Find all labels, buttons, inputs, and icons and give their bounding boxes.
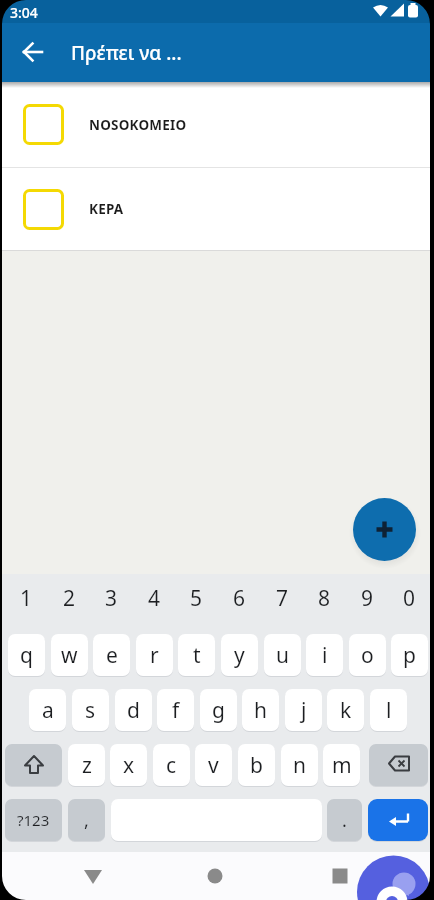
- button[interactable]: e: [93, 634, 130, 676]
- staticText: 1: [20, 584, 33, 613]
- staticText: e: [106, 641, 118, 670]
- button[interactable]: [322, 858, 358, 894]
- staticText: 5: [190, 584, 203, 613]
- staticText: Πρέπει να ...: [71, 40, 182, 66]
- button[interactable]: p: [391, 634, 428, 676]
- staticText: b: [250, 751, 263, 780]
- staticText: 2: [63, 584, 76, 613]
- staticText: NOSOKOMEIO: [89, 116, 187, 134]
- button[interactable]: 9: [349, 583, 386, 613]
- button[interactable]: ?123: [5, 799, 62, 841]
- button[interactable]: u: [264, 634, 301, 676]
- button[interactable]: 4: [136, 583, 173, 613]
- button[interactable]: c: [153, 744, 190, 786]
- button[interactable]: 5: [178, 583, 215, 613]
- staticText: f: [172, 696, 180, 725]
- staticText: p: [403, 641, 416, 670]
- button[interactable]: [5, 744, 62, 786]
- staticText: x: [123, 751, 135, 780]
- staticText: s: [85, 696, 96, 725]
- staticText: g: [212, 696, 225, 725]
- staticText: t: [193, 641, 201, 670]
- button[interactable]: 7: [264, 583, 301, 613]
- button[interactable]: z: [68, 744, 105, 786]
- staticText: c: [166, 751, 177, 780]
- staticText: q: [20, 641, 33, 670]
- button[interactable]: ,: [68, 799, 105, 841]
- button[interactable]: [13, 32, 53, 72]
- button[interactable]: 8: [306, 583, 343, 613]
- staticText: y: [234, 641, 245, 670]
- staticText: o: [361, 641, 374, 670]
- staticText: j: [301, 696, 307, 725]
- staticText: ,: [84, 808, 89, 833]
- staticText: 4: [148, 584, 161, 613]
- button[interactable]: o: [349, 634, 386, 676]
- button[interactable]: k: [327, 689, 364, 731]
- staticText: .: [342, 808, 347, 833]
- staticText: n: [293, 751, 306, 780]
- staticText: i: [322, 641, 328, 670]
- button[interactable]: h: [242, 689, 279, 731]
- button[interactable]: q: [8, 634, 45, 676]
- button[interactable]: j: [285, 689, 322, 731]
- button[interactable]: NOSOKOMEIO: [0, 82, 434, 167]
- staticText: d: [127, 696, 140, 725]
- button[interactable]: [356, 855, 434, 900]
- button[interactable]: .: [327, 799, 362, 841]
- button[interactable]: l: [370, 689, 407, 731]
- staticText: u: [276, 641, 289, 670]
- button[interactable]: i: [306, 634, 343, 676]
- button[interactable]: b: [238, 744, 275, 786]
- button[interactable]: [75, 858, 111, 894]
- button[interactable]: KEPA: [0, 168, 434, 250]
- staticText: h: [254, 696, 267, 725]
- staticText: k: [340, 696, 352, 725]
- button[interactable]: x: [110, 744, 147, 786]
- button[interactable]: y: [221, 634, 258, 676]
- staticText: KEPA: [89, 200, 124, 218]
- staticText: r: [150, 641, 159, 670]
- button[interactable]: v: [195, 744, 232, 786]
- button[interactable]: [369, 744, 428, 786]
- button[interactable]: r: [136, 634, 173, 676]
- staticText: z: [82, 751, 92, 780]
- button[interactable]: 2: [51, 583, 88, 613]
- staticText: l: [386, 696, 392, 725]
- staticText: m: [332, 751, 352, 780]
- button[interactable]: n: [281, 744, 318, 786]
- button[interactable]: [368, 799, 428, 841]
- button[interactable]: 1: [8, 583, 45, 613]
- button[interactable]: d: [115, 689, 152, 731]
- staticText: a: [42, 696, 54, 725]
- staticText: v: [208, 751, 219, 780]
- button[interactable]: 6: [221, 583, 258, 613]
- staticText: 3:04: [10, 3, 38, 22]
- button[interactable]: w: [51, 634, 88, 676]
- staticText: 0: [403, 584, 416, 613]
- button[interactable]: m: [323, 744, 360, 786]
- staticText: 9: [361, 584, 374, 613]
- staticText: 7: [276, 584, 289, 613]
- staticText: 6: [233, 584, 246, 613]
- button[interactable]: 0: [391, 583, 428, 613]
- button[interactable]: t: [178, 634, 215, 676]
- button[interactable]: a: [29, 689, 66, 731]
- staticText: 3: [105, 584, 118, 613]
- button[interactable]: f: [157, 689, 194, 731]
- staticText: ?123: [17, 810, 50, 830]
- button[interactable]: [353, 498, 416, 561]
- button[interactable]: g: [200, 689, 237, 731]
- button[interactable]: s: [72, 689, 109, 731]
- button[interactable]: 3: [93, 583, 130, 613]
- staticText: w: [61, 641, 78, 670]
- staticText: 8: [318, 584, 331, 613]
- button[interactable]: [197, 858, 233, 894]
